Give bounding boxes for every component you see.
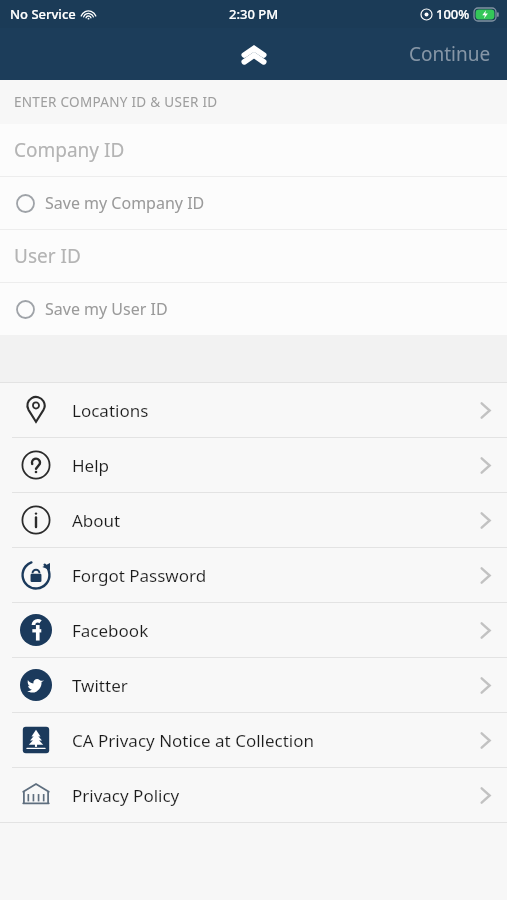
button[interactable]: User ID <box>0 230 507 282</box>
staticText: Continue <box>409 41 491 67</box>
staticText: 100% <box>436 5 470 23</box>
button[interactable]: Save my Company ID <box>0 177 507 229</box>
staticText: About <box>72 509 463 532</box>
button[interactable]: Company ID <box>0 124 507 176</box>
staticText: CA Privacy Notice at Collection <box>72 729 463 752</box>
button[interactable]: About <box>0 493 507 547</box>
staticText: Save my Company ID <box>45 192 205 214</box>
button[interactable]: CA Privacy Notice at Collection <box>0 713 507 767</box>
button[interactable]: Locations <box>0 383 507 437</box>
staticText: Company ID <box>14 137 125 163</box>
staticText: User ID <box>14 243 81 269</box>
button[interactable]: Expand <box>232 32 276 76</box>
staticText: ENTER COMPANY ID & USER ID <box>14 93 218 111</box>
button[interactable]: Help <box>0 438 507 492</box>
button[interactable]: Twitter <box>0 658 507 712</box>
staticText: Help <box>72 454 463 477</box>
staticText: Forgot Password <box>72 564 463 587</box>
staticText: 2:30 PM <box>229 5 279 23</box>
staticText: Locations <box>72 399 463 422</box>
staticText: Privacy Policy <box>72 784 463 807</box>
button[interactable]: Save my User ID <box>0 283 507 335</box>
staticText: Facebook <box>72 619 463 642</box>
staticText: Save my User ID <box>45 298 168 320</box>
staticText: No Service <box>10 5 76 23</box>
button[interactable]: Continue <box>393 31 507 77</box>
button[interactable]: Facebook <box>0 603 507 657</box>
staticText: Twitter <box>72 674 463 697</box>
button[interactable]: Privacy Policy <box>0 768 507 822</box>
button[interactable]: Forgot Password <box>0 548 507 602</box>
